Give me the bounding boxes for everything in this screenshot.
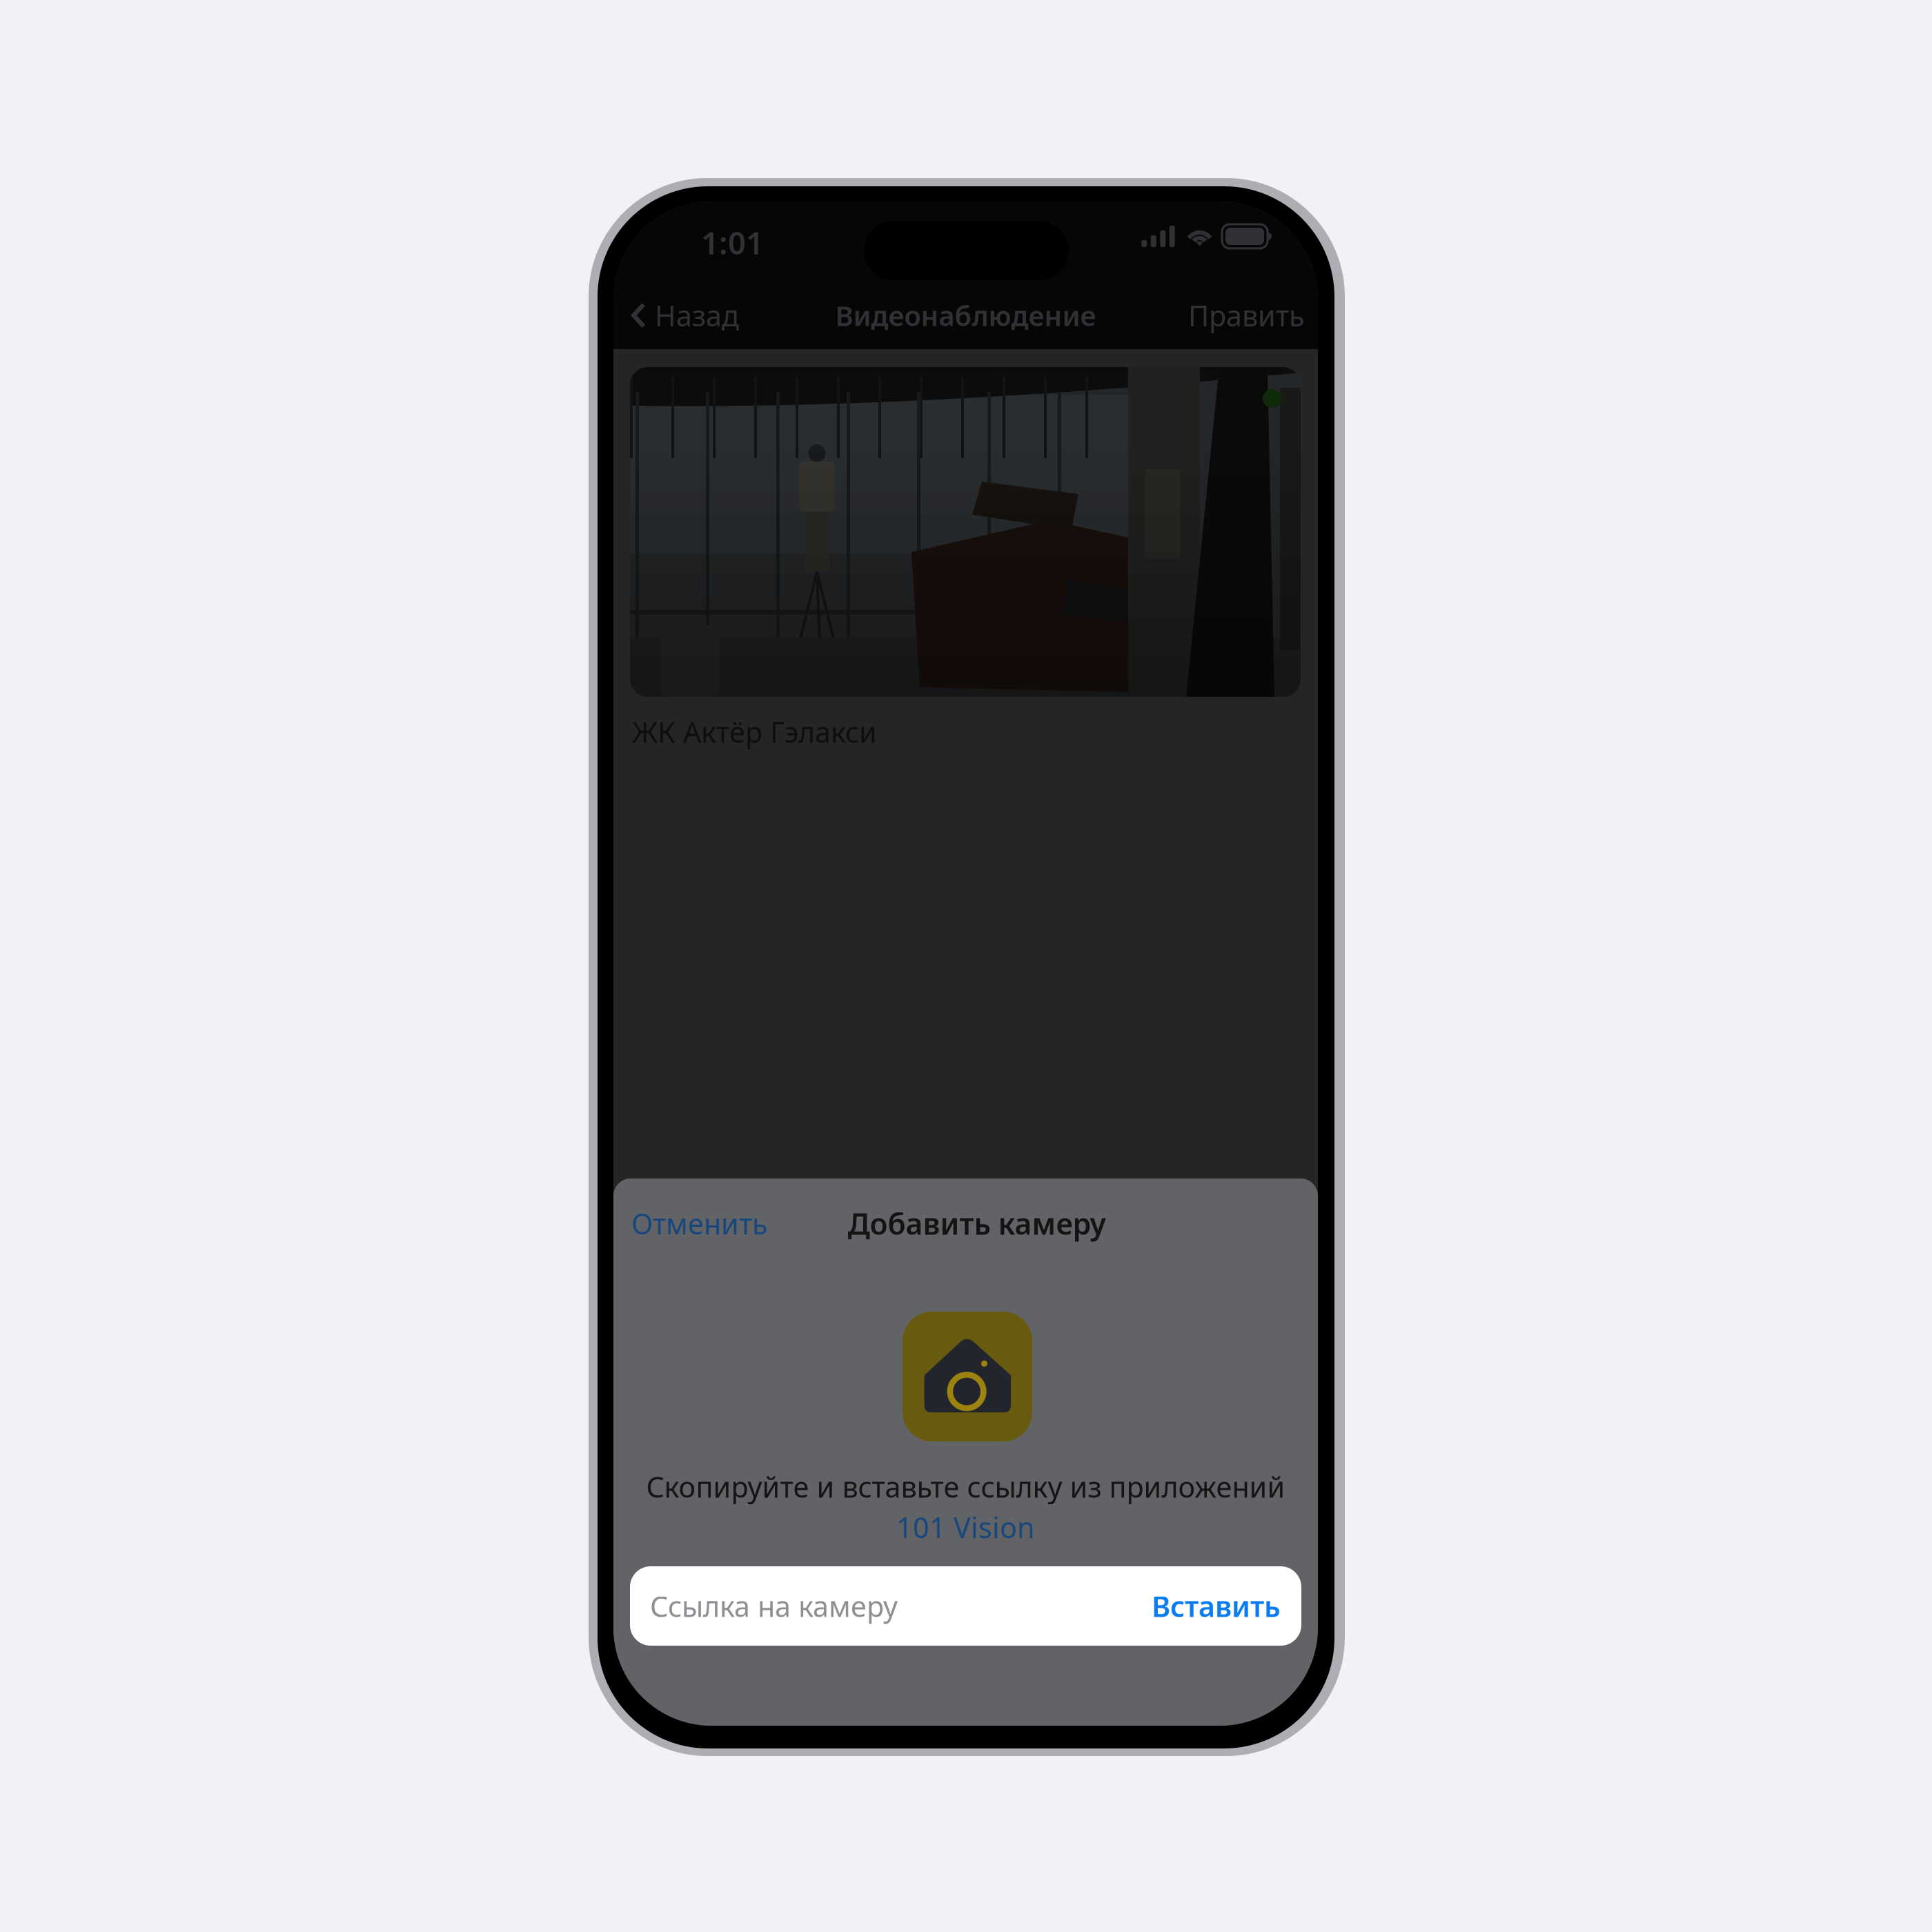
staticText: Назад <box>655 296 739 334</box>
staticText: Скопируйте и вставьте ссылку из приложен… <box>646 1468 1285 1506</box>
button[interactable]: 101 Vision <box>896 1508 1035 1546</box>
button[interactable]: Вставить <box>1152 1587 1281 1625</box>
staticText: Править <box>1188 296 1305 334</box>
staticText: Вставить <box>1152 1587 1281 1625</box>
button[interactable]: Назад <box>618 288 753 342</box>
staticText: 1:01 <box>701 221 764 263</box>
button[interactable]: Отменить <box>623 1194 776 1253</box>
staticText: ЖК Актёр Гэлакси <box>632 713 877 751</box>
button[interactable]: Править <box>1174 288 1314 342</box>
staticText: Добавить камеру <box>848 1204 1106 1243</box>
staticText: Ссылка на камеру <box>650 1587 898 1625</box>
staticText: Видеонаблюдение <box>835 297 1096 334</box>
staticText: Отменить <box>631 1204 768 1242</box>
button[interactable]: ЖК Актёр Гэлакси <box>630 367 1301 758</box>
staticText: 101 Vision <box>896 1508 1035 1546</box>
